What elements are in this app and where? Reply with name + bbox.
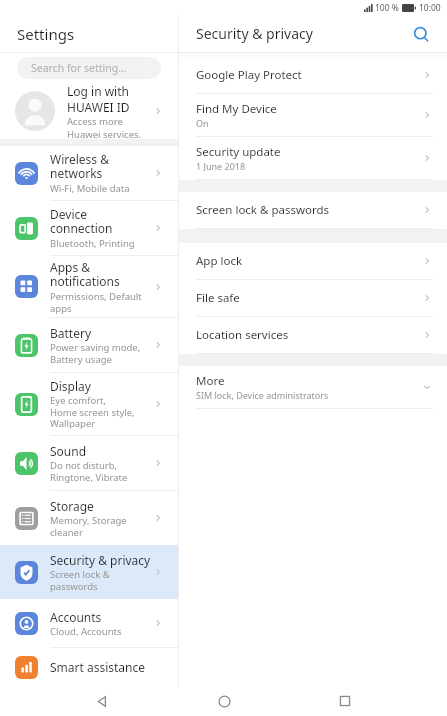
staticText: Security update [196,144,281,160]
staticText: 1 June 2018 [196,160,246,172]
staticText: Storage [50,498,94,514]
staticText: Accounts [50,609,102,625]
staticText: Do not disturb, Ringtone, Vibrate [50,459,128,484]
staticText: HUAWEI ID [67,99,130,115]
staticText: Wireless & networks [50,151,110,182]
button[interactable]: Search [407,20,435,48]
button[interactable]: Security update [179,137,447,179]
staticText: Eye comfort, Home screen style, Wallpape… [50,394,135,430]
staticText: Cloud, Accounts [50,625,122,638]
staticText: 100 % [375,2,399,14]
staticText: Battery [50,325,92,341]
staticText: Settings [17,24,75,44]
staticText: Display [50,378,91,394]
button[interactable]: Smart assistance [0,648,178,686]
button[interactable]: Log in with [0,83,178,139]
staticText: On [196,117,209,129]
button[interactable]: Battery [0,318,178,373]
staticText: Power saving mode, Battery usage [50,341,141,366]
staticText: File safe [196,290,240,306]
button[interactable]: Screen lock & passwords [179,192,447,228]
button[interactable]: Wireless & networks [0,146,178,201]
staticText: Search for setting... [31,61,127,75]
staticText: Device connection [50,206,113,237]
button[interactable]: More [179,366,447,408]
button[interactable]: Display [0,373,178,436]
staticText: Permissions, Default apps [50,290,142,315]
staticText: Screen lock & passwords [50,568,110,593]
staticText: Memory, Storage cleaner [50,514,127,539]
button[interactable]: Apps & notifications [0,256,178,318]
staticText: Location services [196,327,289,343]
button[interactable]: Storage [0,491,178,545]
button[interactable]: Location services [179,317,447,353]
staticText: More [196,373,225,389]
staticText: Find My Device [196,101,277,117]
button[interactable]: Recents [325,686,365,716]
button[interactable]: Google Play Protect [179,57,447,93]
button[interactable]: Find My Device [179,94,447,136]
staticText: App lock [196,253,243,269]
staticText: Log in with [67,83,129,99]
staticText: Security & privacy [196,24,313,43]
button[interactable]: Security & privacy [0,545,178,599]
staticText: Sound [50,443,87,459]
button[interactable]: App lock [179,243,447,279]
button[interactable]: Back [82,686,122,716]
button[interactable]: Home [204,686,244,716]
staticText: Google Play Protect [196,67,302,83]
button[interactable]: Search for setting... [17,57,161,79]
staticText: Wi-Fi, Mobile data [50,182,130,195]
staticText: Huawei services. [67,128,142,139]
staticText: Smart assistance [50,659,146,675]
staticText: Security & privacy [50,552,151,568]
staticText: Bluetooth, Printing [50,237,135,250]
staticText: Access more [67,115,123,128]
staticText: Apps & notifications [50,259,120,290]
button[interactable]: Sound [0,436,178,491]
staticText: 10:00 [419,2,441,14]
button[interactable]: Accounts [0,599,178,648]
button[interactable]: File safe [179,280,447,316]
button[interactable]: Device connection [0,201,178,256]
staticText: Screen lock & passwords [196,202,330,218]
staticText: SIM lock, Device administrators [196,389,329,401]
